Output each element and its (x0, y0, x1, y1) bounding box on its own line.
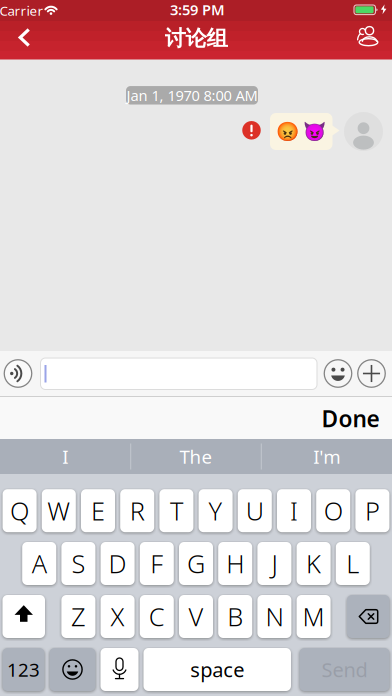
button[interactable]: Message (270, 113, 332, 150)
button[interactable]: G (179, 542, 213, 585)
staticText: 3:59 PM (170, 0, 225, 19)
staticText: space (190, 656, 244, 683)
staticText: F (150, 547, 163, 580)
button[interactable]: Z (61, 595, 95, 638)
button[interactable]: C (140, 595, 174, 638)
staticText: D (109, 547, 127, 580)
button[interactable]: W (42, 489, 76, 532)
button[interactable]: K (297, 542, 331, 585)
button[interactable]: V (179, 595, 213, 638)
staticText: Carrier (0, 2, 43, 19)
staticText: I (62, 444, 68, 469)
button[interactable]: The (136, 439, 256, 474)
staticText: 😡 (276, 121, 299, 142)
button[interactable]: Send (299, 648, 389, 691)
staticText: Jan 1, 1970 8:00 AM (126, 86, 257, 105)
button[interactable]: Q (3, 489, 37, 532)
button[interactable]: X (101, 595, 135, 638)
staticText: Done (321, 403, 379, 433)
staticText: B (227, 600, 243, 633)
button[interactable]: Delete (347, 595, 389, 638)
button[interactable]: A (22, 542, 56, 585)
button[interactable]: Avatar (344, 112, 383, 151)
staticText: P (365, 494, 380, 527)
button[interactable]: I (277, 489, 311, 532)
button[interactable]: B (218, 595, 252, 638)
staticText: C (149, 600, 165, 633)
button[interactable]: Emoji (324, 360, 352, 387)
button[interactable]: I'm (267, 439, 387, 474)
staticText: 123 (7, 657, 40, 682)
staticText: J (271, 547, 277, 580)
staticText: H (226, 547, 244, 580)
staticText: I'm (313, 444, 340, 469)
button[interactable]: Back (9, 18, 39, 56)
button[interactable]: L (336, 542, 370, 585)
button[interactable]: Message field (40, 358, 317, 389)
button[interactable]: Emoji (49, 648, 95, 691)
button[interactable]: Resend message (242, 121, 261, 139)
button[interactable]: I (5, 439, 125, 474)
staticText: 😈 (303, 121, 326, 142)
button[interactable]: S (61, 542, 95, 585)
button[interactable]: H (218, 542, 252, 585)
staticText: L (346, 547, 359, 580)
button[interactable]: Voice message (4, 360, 32, 387)
button[interactable]: Dictate (100, 648, 138, 691)
staticText: Y (209, 494, 223, 527)
staticText: V (188, 600, 203, 633)
button[interactable]: E (81, 489, 115, 532)
staticText: Q (10, 494, 29, 527)
staticText: Send (321, 656, 367, 683)
button[interactable]: Done (315, 397, 385, 439)
button[interactable]: O (316, 489, 350, 532)
button[interactable]: 123 (2, 648, 44, 691)
staticText: E (91, 494, 105, 527)
button[interactable]: J (257, 542, 291, 585)
staticText: O (324, 494, 343, 527)
button[interactable]: D (101, 542, 135, 585)
button[interactable]: F (140, 542, 174, 585)
button[interactable]: R (120, 489, 154, 532)
button[interactable]: P (355, 489, 389, 532)
staticText: U (246, 494, 264, 527)
staticText: M (303, 600, 325, 633)
staticText: K (306, 547, 321, 580)
staticText: R (130, 494, 145, 527)
staticText: Z (71, 600, 86, 633)
staticText: X (111, 600, 125, 633)
button[interactable]: Y (199, 489, 233, 532)
staticText: The (179, 444, 212, 469)
staticText: G (187, 547, 205, 580)
staticText: T (170, 494, 183, 527)
button[interactable]: T (159, 489, 193, 532)
button[interactable]: space (143, 648, 291, 691)
staticText: S (71, 547, 85, 580)
button[interactable]: N (257, 595, 291, 638)
button[interactable]: Group members (352, 22, 386, 56)
button[interactable]: M (297, 595, 331, 638)
button[interactable]: More (358, 360, 385, 387)
staticText: 讨论组 (164, 25, 227, 52)
staticText: W (47, 494, 70, 527)
staticText: N (265, 600, 283, 633)
staticText: A (32, 547, 47, 580)
button[interactable]: U (238, 489, 272, 532)
staticText: I (290, 494, 298, 527)
button[interactable]: Shift (2, 595, 45, 638)
